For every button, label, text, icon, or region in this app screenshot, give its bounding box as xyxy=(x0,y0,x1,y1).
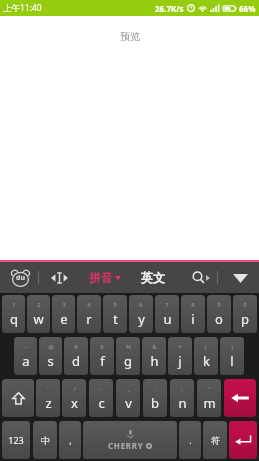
staticText: r xyxy=(86,310,92,328)
button[interactable]: & xyxy=(142,337,166,375)
button[interactable]: 4 xyxy=(77,295,101,333)
button[interactable]: 拼音 xyxy=(87,266,123,289)
staticText: 上午11:40 xyxy=(3,2,42,14)
staticText: # xyxy=(74,343,78,351)
staticText: * xyxy=(178,343,182,351)
staticText: y xyxy=(138,310,145,328)
staticText: 6 xyxy=(139,301,143,309)
staticText: CHERRY xyxy=(108,440,144,451)
staticText: 英文 xyxy=(141,270,165,285)
button[interactable]: _ xyxy=(116,379,140,417)
staticText: _ xyxy=(127,385,130,393)
button[interactable]: . xyxy=(179,421,201,459)
button[interactable]: Cursor move xyxy=(48,268,70,288)
staticText: n xyxy=(178,394,187,412)
staticText: 1 xyxy=(12,301,16,309)
button[interactable]: 英文 xyxy=(139,266,167,289)
button[interactable]: 7 xyxy=(155,295,179,333)
button[interactable]: - xyxy=(89,379,113,417)
staticText: 3 xyxy=(62,301,66,309)
staticText: - xyxy=(100,385,102,393)
staticText: v xyxy=(125,394,132,412)
staticText: f xyxy=(100,352,105,370)
staticText: . xyxy=(189,434,192,446)
button[interactable]: ' xyxy=(36,379,60,417)
button[interactable]: * xyxy=(168,337,192,375)
staticText: % xyxy=(126,343,131,351)
button[interactable]: Space xyxy=(83,421,177,459)
staticText: q xyxy=(10,310,18,328)
button[interactable]: Shift xyxy=(2,379,34,417)
staticText: $ xyxy=(100,343,104,351)
staticText: : xyxy=(154,385,156,393)
staticText: g xyxy=(124,352,132,370)
staticText: 7 xyxy=(165,301,169,309)
staticText: & xyxy=(152,343,157,351)
staticText: 9 xyxy=(217,301,221,309)
staticText: d xyxy=(72,352,80,370)
staticText: 符 xyxy=(211,435,220,446)
staticText: 拼音 xyxy=(89,270,113,285)
staticText: s xyxy=(47,352,54,370)
button[interactable]: 9 xyxy=(207,295,231,333)
button[interactable]: ; xyxy=(170,379,194,417)
button[interactable]: 符 xyxy=(203,421,227,459)
staticText: du xyxy=(16,273,25,283)
staticText: ; xyxy=(181,385,183,393)
staticText: ' xyxy=(47,385,49,393)
staticText: / xyxy=(73,385,76,393)
staticText: 123 xyxy=(8,434,24,446)
button[interactable]: ( xyxy=(194,337,218,375)
staticText: " xyxy=(208,385,211,393)
button[interactable]: Backspace xyxy=(224,379,256,417)
staticText: ) xyxy=(231,343,233,351)
staticText: m xyxy=(203,394,216,412)
button[interactable]: Search xyxy=(189,267,213,288)
staticText: 4 xyxy=(87,301,91,309)
button[interactable]: 1 xyxy=(2,295,25,333)
staticText: ~ xyxy=(24,343,28,351)
button[interactable]: ) xyxy=(220,337,244,375)
button[interactable]: 123 xyxy=(2,421,30,459)
button[interactable]: : xyxy=(143,379,167,417)
staticText: c xyxy=(98,394,105,412)
staticText: o xyxy=(215,310,223,328)
staticText: 中 xyxy=(41,435,50,446)
button[interactable]: 2 xyxy=(27,295,50,333)
staticText: e xyxy=(60,310,68,328)
staticText: , xyxy=(69,434,72,446)
staticText: j xyxy=(178,352,182,370)
staticText: 8 xyxy=(191,301,195,309)
staticText: k xyxy=(203,352,210,370)
staticText: b xyxy=(151,394,159,412)
staticText: 预览 xyxy=(120,30,140,43)
staticText: 5 xyxy=(113,301,117,309)
staticText: @ xyxy=(48,343,54,351)
button[interactable]: 0 xyxy=(233,295,257,333)
button[interactable]: % xyxy=(116,337,140,375)
button[interactable]: # xyxy=(64,337,88,375)
staticText: z xyxy=(45,394,52,412)
staticText: p xyxy=(241,310,249,328)
button[interactable]: 5 xyxy=(103,295,127,333)
button[interactable]: 中 xyxy=(33,421,57,459)
button[interactable]: Hide keyboard xyxy=(228,268,252,288)
button[interactable]: 3 xyxy=(52,295,75,333)
button[interactable]: / xyxy=(62,379,86,417)
button[interactable]: @ xyxy=(39,337,62,375)
button[interactable]: Baidu input method xyxy=(9,267,31,289)
button[interactable]: Enter xyxy=(229,421,257,459)
button[interactable]: 6 xyxy=(129,295,153,333)
staticText: h xyxy=(150,352,159,370)
staticText: t xyxy=(113,310,118,328)
staticText: x xyxy=(71,394,78,412)
staticText: i xyxy=(191,310,195,328)
staticText: a xyxy=(22,352,30,370)
button[interactable]: $ xyxy=(90,337,114,375)
button[interactable]: " xyxy=(197,379,221,417)
staticText: w xyxy=(33,310,44,328)
button[interactable]: ~ xyxy=(14,337,37,375)
staticText: 2 xyxy=(37,301,41,309)
button[interactable]: 8 xyxy=(181,295,205,333)
button[interactable]: , xyxy=(59,421,81,459)
